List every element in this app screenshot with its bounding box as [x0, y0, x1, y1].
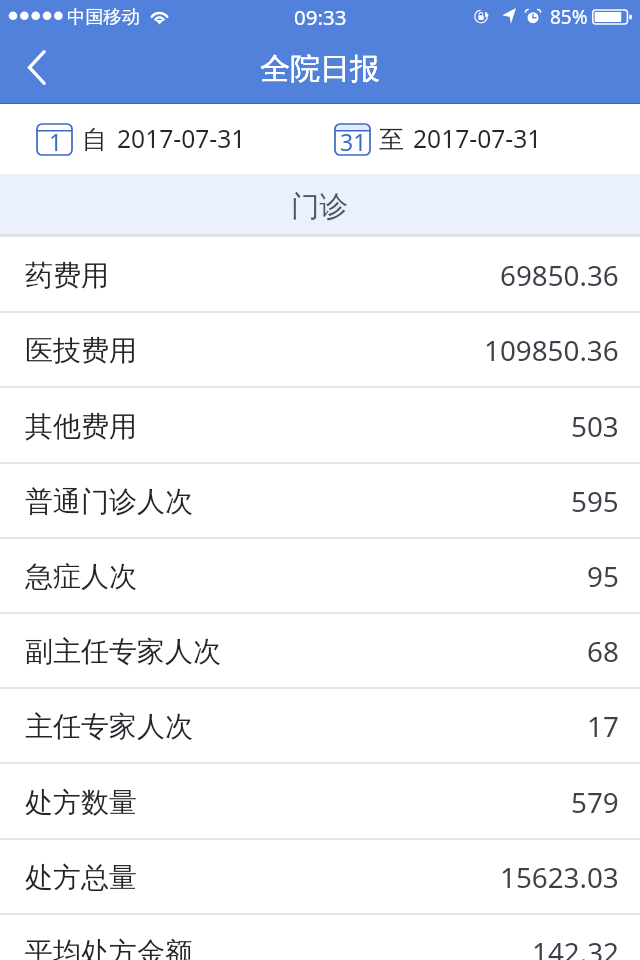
staticText: 2017-07-31 — [413, 122, 542, 156]
staticText: 主任专家人次 — [25, 709, 193, 744]
button[interactable]: 处方数量 — [0, 765, 640, 840]
staticText: 595 — [571, 482, 619, 520]
staticText: 69850.36 — [500, 256, 619, 294]
staticText: 至 — [379, 124, 404, 155]
button[interactable]: 处方总量 — [0, 840, 640, 915]
button[interactable]: 医技费用 — [0, 313, 640, 388]
staticText: 109850.36 — [484, 331, 619, 369]
staticText: 31 — [340, 126, 367, 157]
staticText: 处方总量 — [25, 860, 137, 895]
staticText: 医技费用 — [25, 333, 137, 368]
staticText: 142.32 — [532, 933, 619, 960]
button[interactable]: 副主任专家人次 — [0, 614, 640, 689]
button[interactable]: 1 — [36, 112, 246, 166]
staticText: 副主任专家人次 — [25, 634, 221, 669]
staticText: 579 — [571, 783, 619, 821]
button[interactable]: Back — [0, 33, 72, 104]
staticText: 普通门诊人次 — [25, 484, 193, 519]
staticText: 门诊 — [291, 189, 348, 225]
staticText: 95 — [587, 557, 619, 595]
button[interactable]: 普通门诊人次 — [0, 464, 640, 539]
button[interactable]: 药费用 — [0, 238, 640, 313]
staticText: 中国移动 — [67, 5, 140, 28]
staticText: 其他费用 — [25, 409, 137, 444]
staticText: 药费用 — [25, 258, 109, 293]
staticText: 平均处方金额 — [25, 935, 193, 960]
button[interactable]: 31 — [334, 112, 542, 166]
staticText: 处方数量 — [25, 785, 137, 820]
staticText: 68 — [587, 632, 619, 670]
button[interactable]: 其他费用 — [0, 389, 640, 464]
staticText: 85% — [550, 4, 588, 30]
staticText: 全院日报 — [260, 50, 380, 88]
staticText: 1 — [49, 126, 63, 157]
button[interactable]: 主任专家人次 — [0, 689, 640, 764]
staticText: 2017-07-31 — [117, 122, 246, 156]
staticText: 自 — [82, 124, 107, 155]
staticText: 15623.03 — [500, 858, 619, 896]
staticText: 急症人次 — [25, 559, 137, 594]
staticText: 17 — [587, 707, 619, 745]
button[interactable]: 急症人次 — [0, 539, 640, 614]
button[interactable]: 平均处方金额 — [0, 915, 640, 960]
staticText: 09:33 — [294, 3, 347, 31]
staticText: 全院日报 — [260, 50, 380, 88]
staticText: 503 — [571, 407, 619, 445]
